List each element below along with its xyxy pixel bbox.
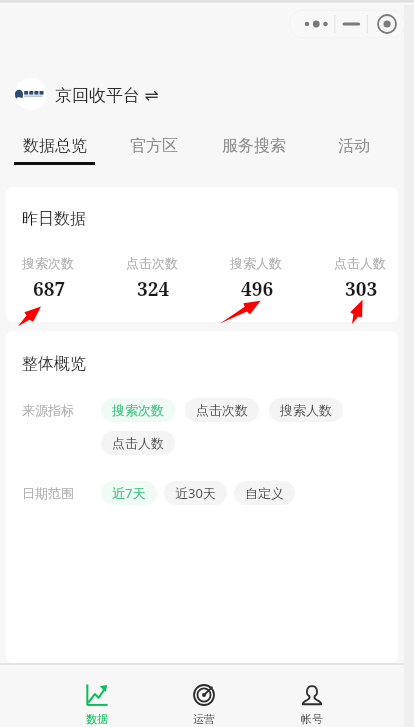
staticText: 近30天: [175, 484, 216, 502]
staticText: 303: [345, 276, 378, 302]
button[interactable]: 帐号: [285, 665, 339, 727]
button[interactable]: 活动: [304, 136, 404, 172]
button[interactable]: 搜索次数: [101, 398, 175, 422]
staticText: 搜索次数: [22, 255, 74, 271]
button[interactable]: 运营: [177, 665, 231, 727]
staticText: 搜索人数: [280, 402, 332, 418]
staticText: 服务搜索: [222, 136, 286, 156]
staticText: 整体概览: [22, 354, 86, 374]
staticText: 687: [33, 276, 66, 302]
button[interactable]: 官方区: [104, 136, 204, 172]
button[interactable]: 服务搜索: [204, 136, 304, 172]
staticText: 点击人数: [334, 255, 386, 271]
staticText: 帐号: [301, 712, 323, 726]
staticText: 数据: [86, 712, 108, 726]
staticText: 324: [137, 276, 170, 302]
staticText: 官方区: [130, 136, 178, 156]
staticText: 来源指标: [22, 402, 74, 418]
staticText: 昨日数据: [22, 209, 86, 229]
button[interactable]: 自定义: [234, 481, 295, 505]
staticText: 点击次数: [196, 402, 248, 418]
staticText: 搜索人数: [230, 255, 282, 271]
button[interactable]: 近30天: [164, 481, 227, 505]
staticText: 活动: [338, 136, 370, 156]
staticText: 搜索次数: [112, 402, 164, 418]
staticText: 点击人数: [112, 435, 164, 451]
staticText: 自定义: [245, 485, 284, 501]
button[interactable]: 点击人数: [101, 431, 175, 455]
button[interactable]: 点击次数: [185, 398, 259, 422]
staticText: 运营: [193, 712, 215, 726]
staticText: 数据总览: [23, 136, 87, 156]
staticText: 点击次数: [126, 255, 178, 271]
button[interactable]: 近7天: [101, 481, 157, 505]
button[interactable]: 数据总览: [4, 136, 104, 172]
button[interactable]: 搜索人数: [269, 398, 343, 422]
staticText: 京回收平台 ⇌: [55, 83, 159, 106]
button[interactable]: 数据: [70, 665, 124, 727]
staticText: 近7天: [112, 484, 146, 502]
button[interactable]: Mini program menu: [289, 10, 405, 38]
staticText: 日期范围: [22, 485, 74, 501]
staticText: 496: [241, 276, 274, 302]
